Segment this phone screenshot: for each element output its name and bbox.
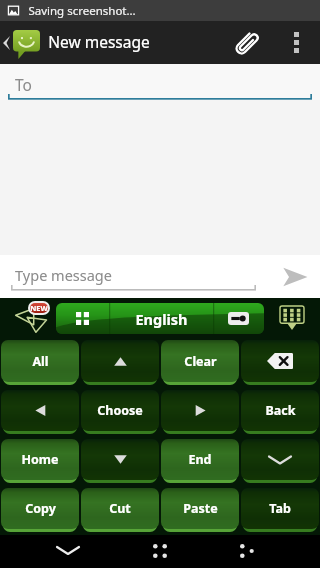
button[interactable]: Copy	[1, 488, 79, 529]
button[interactable]: Recent apps	[213, 535, 320, 568]
button[interactable]: Keypad	[264, 298, 320, 338]
staticText: Back	[265, 402, 296, 419]
staticText: Copy	[25, 500, 56, 517]
button[interactable]: Up	[81, 340, 159, 382]
button[interactable]: Clear	[161, 340, 239, 382]
button[interactable]: All	[1, 340, 79, 382]
button[interactable]: Home	[106, 535, 213, 568]
staticText: Home	[21, 451, 59, 468]
staticText: To	[15, 74, 32, 95]
staticText: Tab	[269, 500, 291, 517]
button[interactable]: End	[161, 439, 239, 480]
button[interactable]: Hide keyboard	[0, 535, 106, 568]
button[interactable]: Send	[270, 255, 320, 298]
button[interactable]: Left	[1, 390, 79, 431]
button[interactable]: Up	[0, 21, 41, 64]
button[interactable]: Choose	[81, 390, 159, 431]
staticText: All	[32, 353, 49, 370]
button[interactable]: Tab	[241, 488, 319, 529]
button[interactable]: Cut	[81, 488, 159, 529]
staticText: Cut	[109, 500, 131, 517]
button[interactable]: English	[109, 303, 213, 334]
staticText: End	[188, 451, 212, 468]
button[interactable]: Paste	[161, 488, 239, 529]
button[interactable]: What's new	[0, 298, 56, 338]
staticText: Type message	[15, 265, 112, 285]
button[interactable]: Right	[161, 390, 239, 431]
staticText: Paste	[183, 500, 218, 517]
staticText: English	[135, 309, 188, 329]
button[interactable]: Keyboard layouts	[56, 303, 264, 334]
button[interactable]: Keyboard settings	[213, 303, 264, 334]
button[interactable]: Down	[81, 439, 159, 480]
button[interactable]: Hide keyboard	[241, 439, 319, 480]
staticText: Clear	[184, 353, 217, 370]
button[interactable]: Backspace	[241, 340, 319, 382]
button[interactable]: More options	[273, 21, 320, 64]
button[interactable]: Home	[1, 439, 79, 480]
staticText: Choose	[97, 402, 143, 419]
button[interactable]: Keyboard layouts	[56, 303, 109, 334]
button[interactable]: Attach	[225, 21, 273, 64]
button[interactable]: Back	[241, 390, 319, 431]
staticText: Saving screenshot…	[28, 3, 136, 19]
staticText: New message	[48, 31, 150, 52]
staticText: NEW	[30, 303, 48, 313]
